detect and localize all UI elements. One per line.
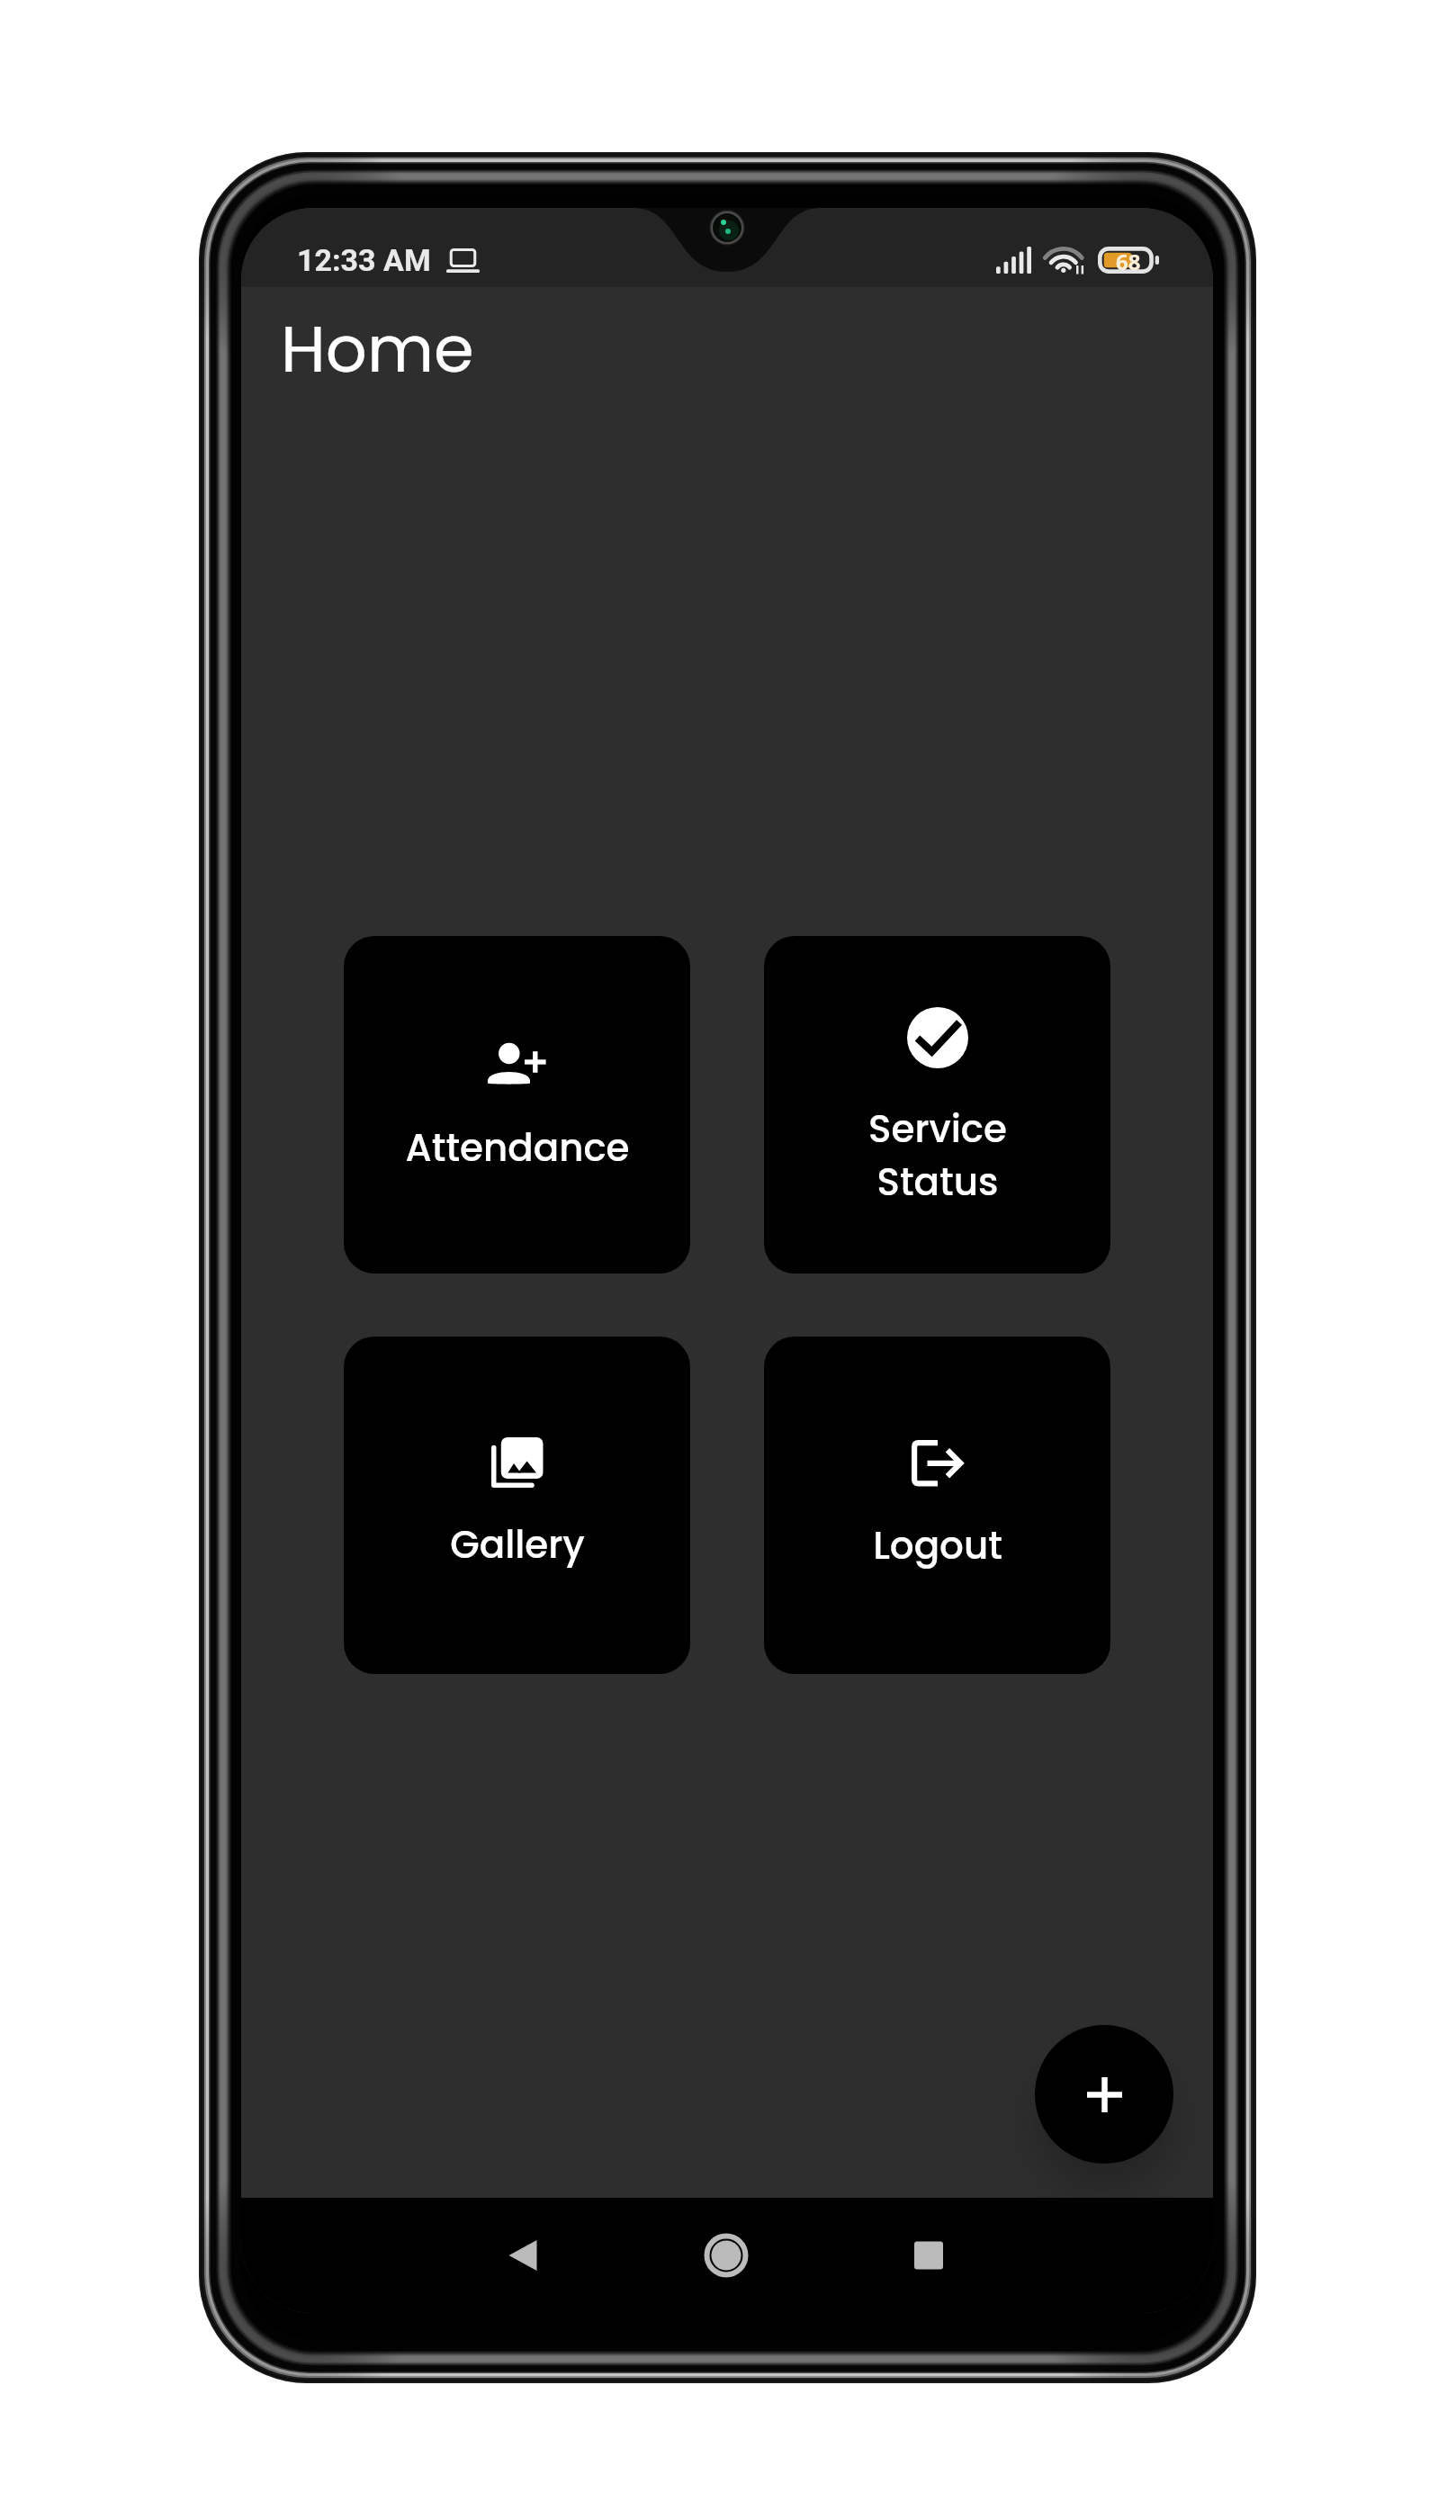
staticText: Logout <box>873 1519 1002 1572</box>
button[interactable]: Logout <box>764 1336 1110 1674</box>
button[interactable]: Add <box>1035 2025 1173 2164</box>
button[interactable]: Recent apps <box>861 2198 996 2313</box>
staticText: 68 <box>1116 247 1141 274</box>
button[interactable]: Attendance <box>344 936 690 1273</box>
staticText: Gallery <box>450 1518 585 1571</box>
staticText: Attendance <box>405 1121 630 1174</box>
button[interactable]: Service Status <box>764 936 1110 1273</box>
staticText: 12:33 AM <box>297 242 431 278</box>
button[interactable]: Back <box>455 2198 590 2313</box>
staticText: Service Status <box>868 1102 1007 1209</box>
button[interactable]: Home <box>659 2198 794 2313</box>
staticText: Home <box>281 303 474 394</box>
button[interactable]: Gallery <box>344 1336 690 1674</box>
